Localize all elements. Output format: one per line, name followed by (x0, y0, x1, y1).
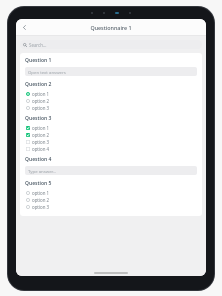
staticText: Type answer... (28, 168, 57, 174)
button[interactable]: option 2 (25, 97, 197, 104)
staticText: Question 4 (25, 156, 52, 163)
staticText: option 3 (32, 139, 50, 145)
staticText: Question 1 (25, 57, 52, 64)
button[interactable]: Type answer... (25, 166, 197, 175)
staticText: option 2 (32, 132, 50, 138)
staticText: Question 5 (25, 180, 52, 187)
button[interactable]: option 1 (25, 189, 197, 196)
button[interactable]: option 3 (25, 138, 197, 145)
staticText: option 1 (32, 91, 50, 97)
button[interactable]: Search... (20, 40, 202, 49)
button[interactable]: option 2 (25, 196, 197, 203)
staticText: option 3 (32, 204, 50, 210)
staticText: Question 2 (25, 81, 52, 88)
button[interactable]: option 3 (25, 203, 197, 210)
button[interactable]: Back (18, 21, 30, 33)
staticText: option 2 (32, 197, 50, 203)
staticText: Search... (29, 42, 47, 48)
button[interactable]: option 4 (25, 145, 197, 152)
button[interactable]: option 1 (25, 124, 197, 131)
button[interactable]: option 3 (25, 104, 197, 111)
staticText: Questionnaire 1 (90, 24, 132, 31)
staticText: Question 3 (25, 115, 52, 122)
staticText: Open text answers (28, 69, 66, 75)
staticText: option 4 (32, 146, 50, 152)
staticText: option 1 (32, 190, 50, 196)
staticText: option 2 (32, 98, 50, 104)
staticText: option 1 (32, 125, 50, 131)
staticText: option 3 (32, 105, 50, 111)
button[interactable]: Open text answers (25, 67, 197, 76)
button[interactable]: option 1 (25, 90, 197, 97)
button[interactable]: option 2 (25, 131, 197, 138)
